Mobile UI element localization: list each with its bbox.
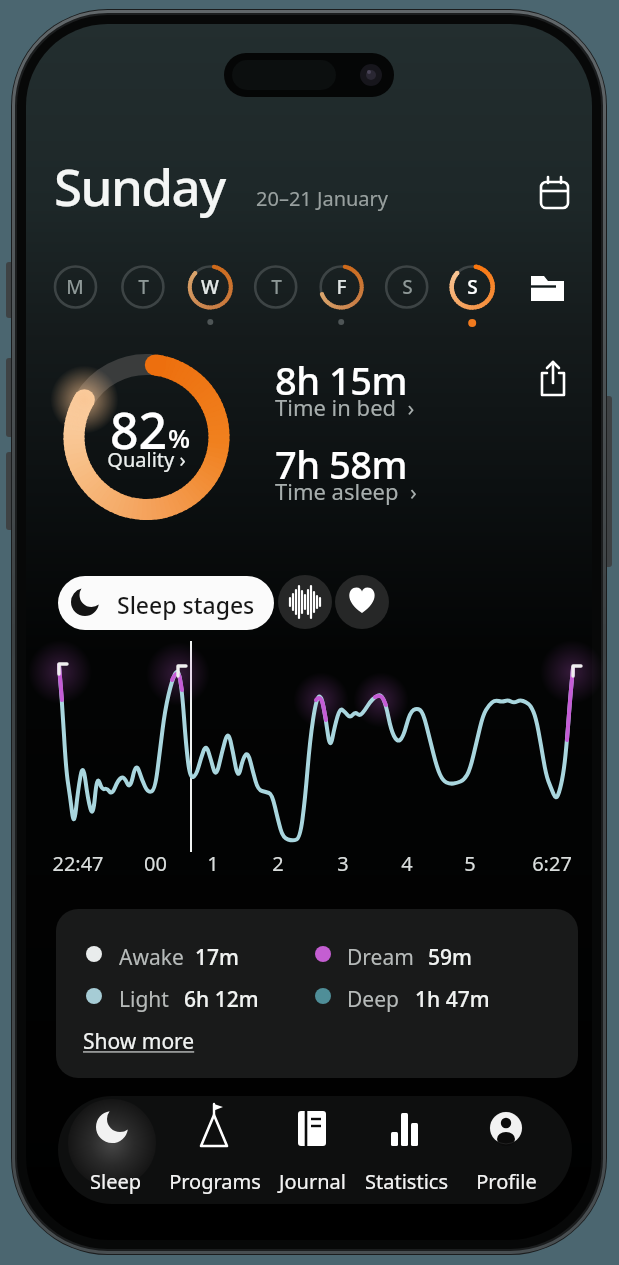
- staticText: Light: [119, 985, 169, 1014]
- button[interactable]: [170, 1098, 260, 1198]
- staticText: M: [66, 274, 84, 300]
- staticText: Journal: [279, 1168, 346, 1195]
- staticText: 6h 12m: [184, 985, 259, 1014]
- button[interactable]: [80, 1018, 205, 1052]
- staticText: 6:27: [532, 850, 572, 877]
- staticText: Dream: [347, 943, 414, 972]
- button[interactable]: [58, 576, 274, 630]
- staticText: F: [336, 274, 347, 300]
- button[interactable]: [270, 352, 450, 422]
- staticText: 1: [207, 850, 219, 877]
- button[interactable]: [450, 264, 494, 310]
- staticText: Show more: [83, 1027, 195, 1056]
- button[interactable]: [278, 575, 333, 630]
- staticText: T: [271, 274, 282, 300]
- button[interactable]: [267, 1098, 357, 1198]
- button[interactable]: [53, 264, 97, 310]
- button[interactable]: [121, 264, 165, 310]
- staticText: 59m: [428, 943, 472, 972]
- staticText: Time in bed ›: [275, 392, 415, 422]
- button[interactable]: [68, 1098, 158, 1198]
- staticText: Sleep: [90, 1168, 141, 1195]
- button[interactable]: [254, 264, 298, 310]
- button[interactable]: [62, 352, 232, 522]
- button[interactable]: [270, 437, 450, 507]
- button[interactable]: [461, 1098, 551, 1198]
- button[interactable]: [335, 575, 390, 630]
- button[interactable]: [188, 264, 232, 310]
- staticText: Time asleep ›: [275, 476, 417, 506]
- staticText: Sleep stages: [117, 589, 255, 620]
- staticText: 17m: [195, 943, 239, 972]
- staticText: 7h 58m: [275, 438, 407, 490]
- staticText: S: [467, 274, 478, 300]
- staticText: 20–21 January: [256, 185, 389, 212]
- staticText: W: [201, 274, 219, 300]
- button[interactable]: [385, 264, 429, 310]
- staticText: Sunday: [54, 151, 225, 220]
- staticText: %: [168, 420, 191, 455]
- staticText: S: [402, 274, 413, 300]
- staticText: 1h 47m: [415, 985, 490, 1014]
- staticText: 22:47: [52, 850, 104, 877]
- staticText: Programs: [169, 1168, 261, 1195]
- staticText: T: [138, 274, 149, 300]
- staticText: 3: [337, 850, 349, 877]
- staticText: Awake: [119, 943, 184, 972]
- staticText: 00: [144, 850, 167, 877]
- staticText: 5: [464, 850, 476, 877]
- staticText: 8h 15m: [275, 354, 407, 406]
- button[interactable]: [534, 171, 578, 215]
- button[interactable]: [319, 264, 363, 310]
- staticText: 2: [272, 850, 284, 877]
- button[interactable]: [524, 266, 572, 310]
- staticText: 82: [110, 396, 168, 464]
- staticText: Quality ›: [107, 446, 186, 473]
- staticText: Deep: [347, 985, 399, 1014]
- button[interactable]: [361, 1098, 451, 1198]
- staticText: Statistics: [365, 1168, 448, 1195]
- staticText: Profile: [476, 1168, 537, 1195]
- button[interactable]: [533, 358, 577, 402]
- staticText: 4: [401, 850, 413, 877]
